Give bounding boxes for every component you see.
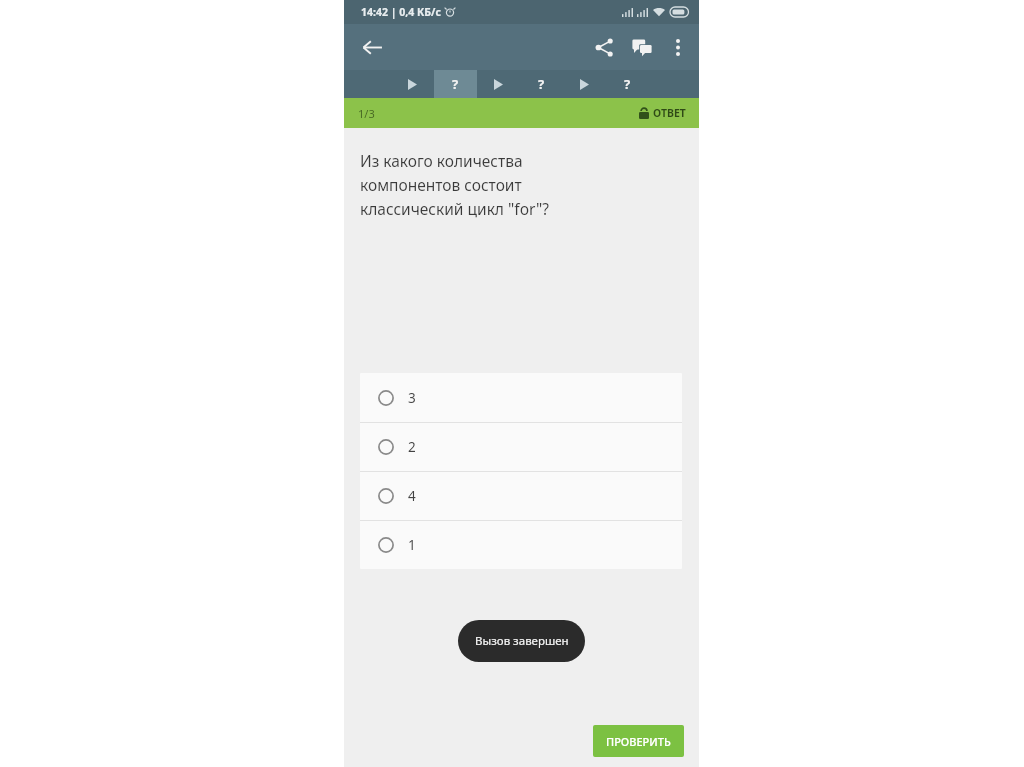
- button[interactable]: Back: [352, 27, 392, 67]
- staticText: 3: [408, 389, 416, 407]
- button[interactable]: Lesson step: [563, 70, 606, 98]
- staticText: ?: [452, 75, 459, 93]
- button[interactable]: 2: [360, 423, 682, 471]
- button[interactable]: Comments: [623, 28, 661, 66]
- staticText: 1/3: [358, 106, 375, 121]
- staticText: 2: [408, 438, 416, 456]
- button[interactable]: 3: [360, 373, 682, 422]
- staticText: Из какого количества компонентов состоит…: [360, 150, 550, 219]
- staticText: 4: [408, 487, 416, 505]
- button[interactable]: Share: [585, 28, 623, 66]
- staticText: ?: [538, 75, 545, 93]
- button[interactable]: Lesson step: [391, 70, 434, 98]
- button[interactable]: More options: [661, 30, 695, 64]
- button[interactable]: Question step: [606, 70, 649, 98]
- staticText: 1: [408, 536, 416, 554]
- button[interactable]: Question step: [434, 70, 477, 98]
- button[interactable]: 1: [360, 521, 682, 569]
- staticText: ?: [624, 75, 631, 93]
- button[interactable]: Question step: [520, 70, 563, 98]
- staticText: 14:42 | 0,4 КБ/с: [361, 5, 441, 19]
- staticText: Вызов завершен: [475, 633, 569, 649]
- button[interactable]: 4: [360, 472, 682, 520]
- staticText: ОТВЕТ: [653, 106, 686, 120]
- button[interactable]: ПРОВЕРИТЬ: [593, 725, 684, 757]
- button[interactable]: Lesson step: [477, 70, 520, 98]
- button[interactable]: ОТВЕТ: [639, 106, 686, 120]
- staticText: ПРОВЕРИТЬ: [606, 734, 671, 749]
